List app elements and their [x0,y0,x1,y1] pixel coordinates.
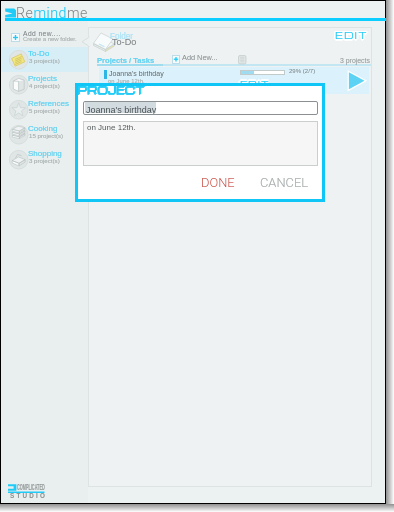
button[interactable]: Projects [1,72,88,97]
staticText: EDIT [336,30,369,43]
staticText: DONE [201,175,235,190]
button[interactable]: Add new.... [1,28,88,46]
staticText: EDIT [334,28,367,41]
staticText: 4 project(s) [29,82,60,89]
button[interactable]: EDIT [333,28,369,43]
button[interactable]: Add New... [172,54,220,65]
staticText: EDIT [239,79,269,91]
staticText: Folder [110,32,134,41]
staticText: EDIT [335,29,368,42]
staticText: Joanna's birthday [86,105,157,115]
button[interactable]: Projects / Tasks [97,55,157,66]
staticText: Projects / Tasks [97,56,155,64]
staticText: EDIT [337,29,370,42]
staticText: Add new.... [23,30,61,37]
staticText: EDIT [240,78,270,90]
button[interactable]: References [1,97,88,122]
button[interactable]: To-Do [1,47,88,72]
staticText: EDIT [241,79,271,91]
button[interactable]: Shopping [1,147,88,172]
staticText: EDIT [238,79,268,91]
staticText: EDIT [335,31,368,44]
button[interactable]: Joanna's birthday [99,67,369,94]
staticText: EDIT [334,29,367,42]
staticText: Joanna's birthday [109,70,164,78]
staticText: EDIT [336,28,369,41]
staticText: PROJECT [78,82,146,96]
staticText: 3 projects [340,57,370,65]
staticText: CANCEL [260,175,309,190]
staticText: References [28,99,69,108]
button[interactable]: CANCEL [260,175,308,188]
staticText: EDIT [240,79,270,91]
staticText: EDIT [239,78,269,90]
button[interactable]: Play [347,71,366,91]
staticText: Shopping [28,149,62,158]
staticText: STUDIO [10,492,47,499]
staticText: To-Do [112,37,137,47]
staticText: 3 project(s) [29,157,60,164]
staticText: PROJECT [77,83,145,97]
staticText: 5 project(s) [29,107,60,114]
staticText: on June 12th. [87,123,136,132]
staticText: Create a new folder. [23,36,77,43]
staticText: COMPLICATED [17,482,45,491]
staticText: Projects [28,74,57,83]
staticText: EDIT [240,79,270,91]
button[interactable]: Joanna's birthday [83,101,318,115]
button[interactable]: Cooking [1,122,88,147]
staticText: To-Do [28,49,50,58]
button[interactable]: List options [238,55,247,65]
staticText: EDIT [240,77,270,89]
button[interactable]: EDIT [238,78,270,89]
staticText: Cooking [28,124,58,133]
staticText: 29% (2/7) [289,68,316,75]
staticText: on June 12th. [108,78,145,85]
staticText: EDIT [334,30,367,43]
staticText: Remindme [16,5,88,22]
staticText: 15 project(s) [29,132,64,139]
staticText: PROJECT [77,82,145,96]
staticText: EDIT [335,28,368,41]
staticText: EDIT [240,80,270,92]
staticText: Add New... [182,53,218,61]
button[interactable]: on June 12th. [83,121,318,166]
button[interactable]: DONE [201,175,235,188]
staticText: 3 project(s) [29,57,60,64]
